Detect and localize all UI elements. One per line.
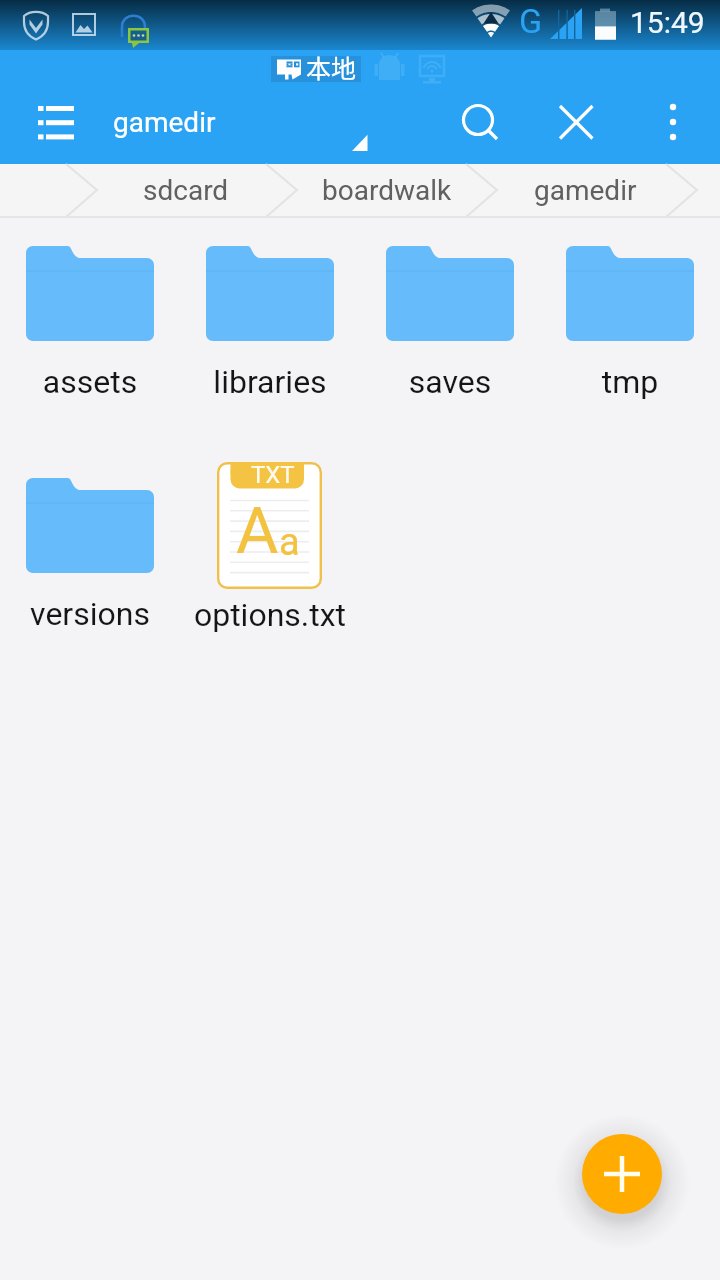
staticText: tmp — [540, 363, 720, 401]
button[interactable]: Search — [448, 102, 512, 166]
staticText: TXT — [251, 461, 295, 489]
button[interactable]: saves — [360, 230, 540, 415]
staticText: options.txt — [180, 596, 360, 634]
button[interactable]: sdcard — [143, 174, 229, 207]
staticText: gamedir — [113, 106, 216, 139]
button[interactable]: TXT — [180, 462, 360, 647]
button[interactable]: Add — [582, 1134, 662, 1214]
staticText: libraries — [180, 363, 360, 401]
button[interactable]: More options — [642, 102, 704, 164]
button[interactable]: tmp — [540, 230, 720, 415]
staticText: versions — [0, 595, 180, 633]
staticText: A — [236, 493, 279, 569]
button[interactable]: Close — [544, 102, 608, 166]
button[interactable] — [271, 56, 361, 82]
button[interactable]: 本地 — [306, 49, 357, 85]
button[interactable]: assets — [0, 230, 180, 415]
staticText: 15:49 — [630, 5, 705, 40]
button[interactable]: boardwalk — [322, 174, 452, 207]
staticText: assets — [0, 363, 180, 401]
staticText: a — [279, 520, 300, 565]
button[interactable]: List view — [22, 106, 90, 154]
button[interactable]: versions — [0, 462, 180, 647]
staticText: saves — [360, 363, 540, 401]
staticText: G — [519, 1, 543, 41]
button[interactable]: gamedir — [534, 174, 637, 207]
button[interactable]: libraries — [180, 230, 360, 415]
